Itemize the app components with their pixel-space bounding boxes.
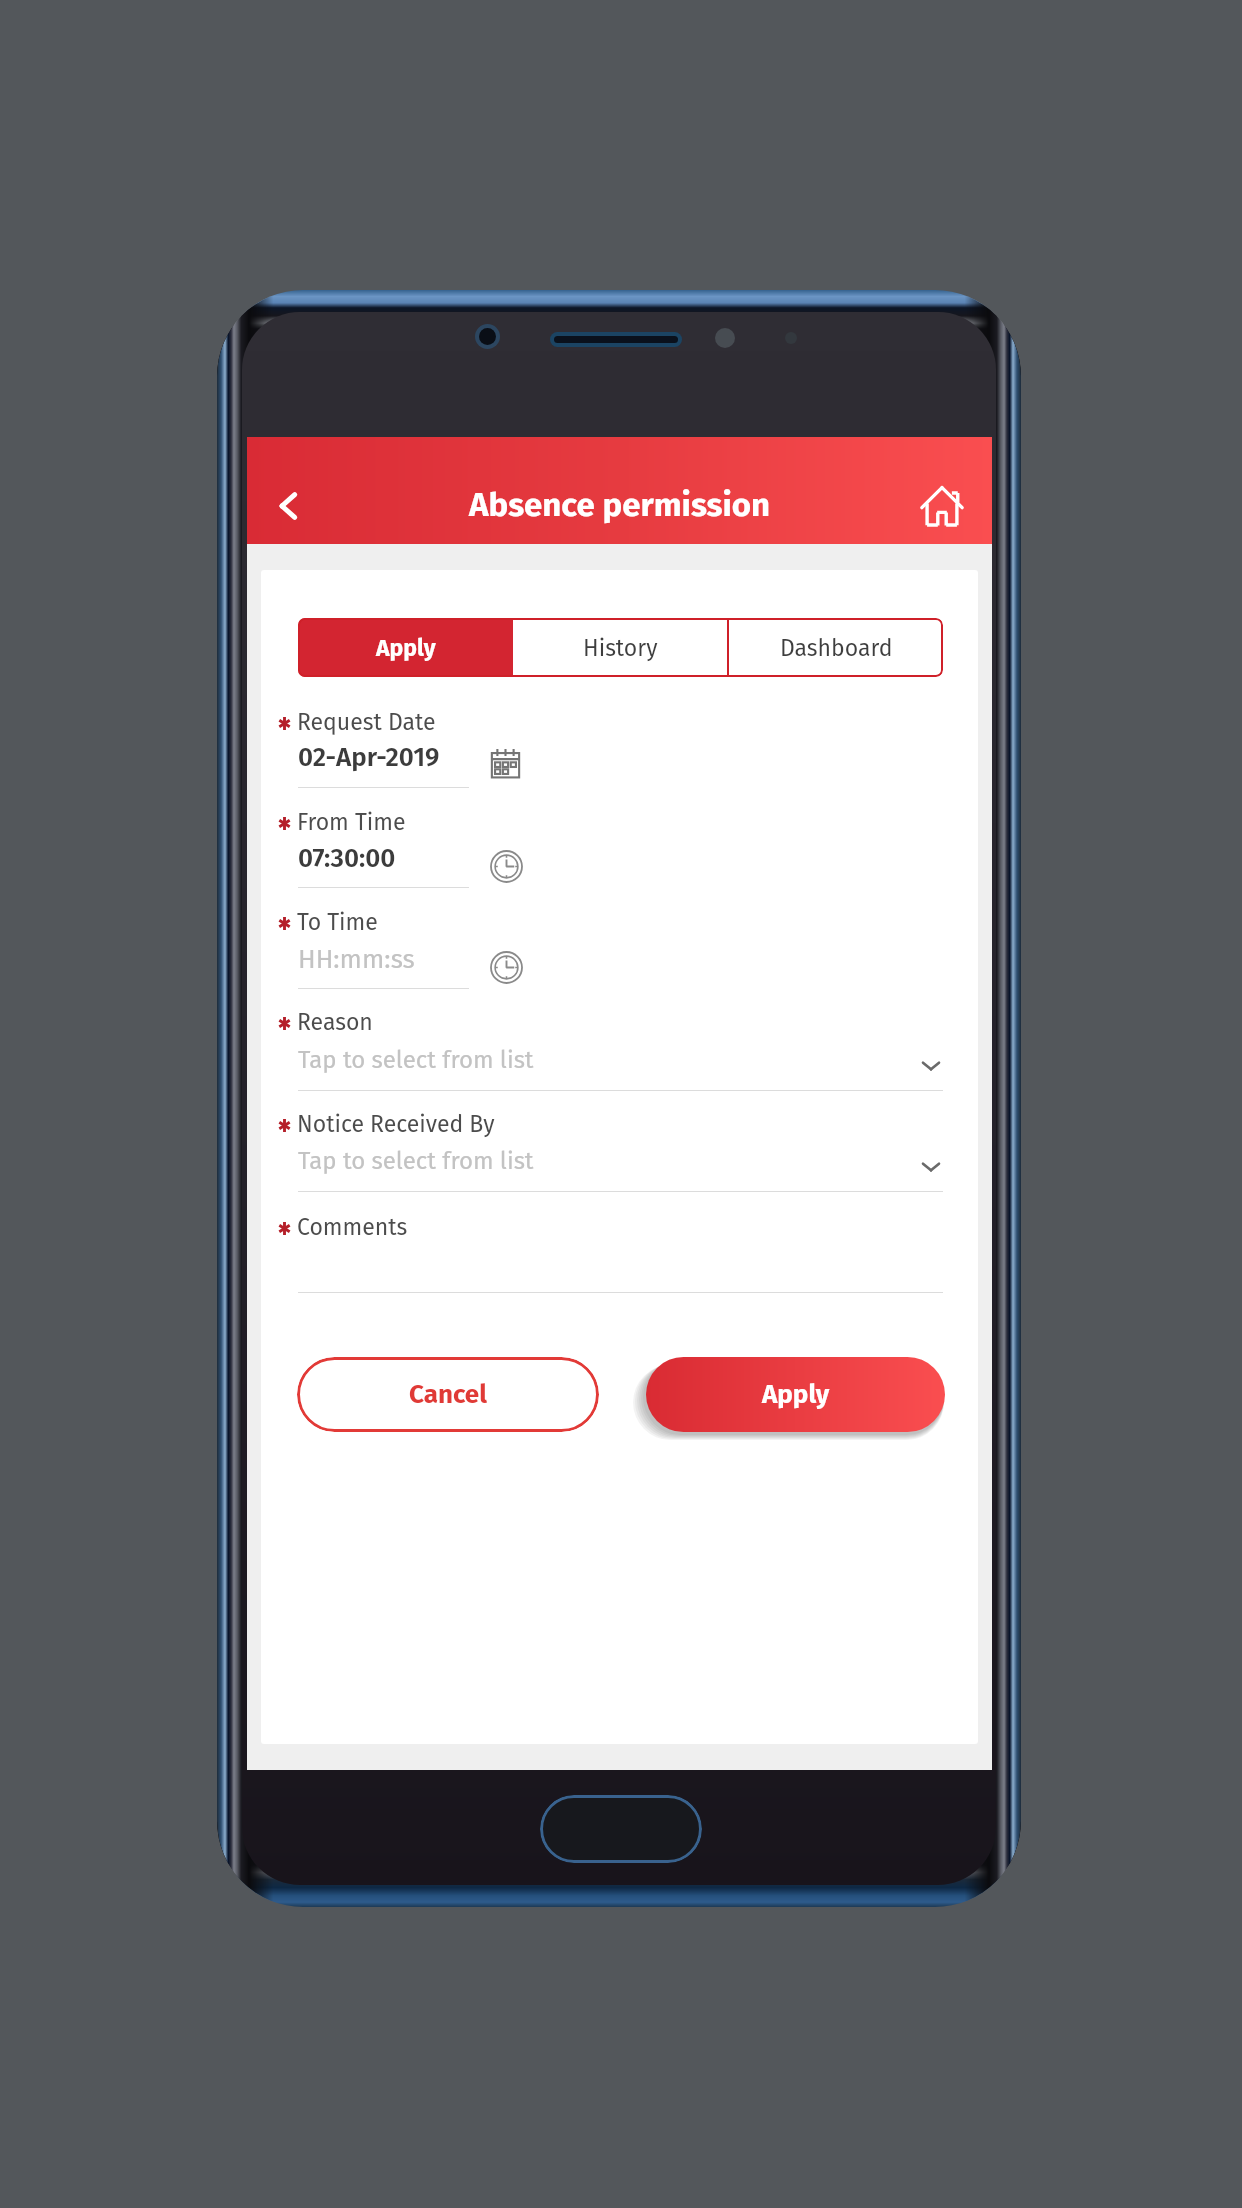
- staticText: Request Date: [297, 708, 436, 736]
- button[interactable]: Tap to select from list: [298, 1147, 943, 1176]
- button[interactable]: Pick time: [484, 945, 528, 989]
- button[interactable]: Open list: [909, 1145, 953, 1189]
- button[interactable]: 07:30:00: [298, 843, 469, 874]
- button[interactable]: Back: [249, 452, 327, 559]
- button[interactable]: Pick date: [483, 741, 527, 785]
- button[interactable]: Pick time: [484, 844, 528, 888]
- staticText: 07:30:00: [298, 843, 396, 874]
- staticText: Apply: [762, 1379, 830, 1410]
- button[interactable]: Open list: [909, 1044, 953, 1088]
- staticText: Tap to select from list: [298, 1046, 534, 1075]
- button[interactable]: 02-Apr-2019: [298, 742, 469, 773]
- button[interactable]: Cancel: [297, 1357, 599, 1432]
- staticText: Cancel: [409, 1379, 487, 1410]
- button[interactable]: Dashboard: [729, 618, 943, 677]
- button[interactable]: Apply: [298, 618, 513, 677]
- staticText: 02-Apr-2019: [298, 742, 440, 773]
- button[interactable]: Home: [890, 452, 994, 559]
- button[interactable]: Tap to select from list: [298, 1046, 943, 1075]
- button[interactable]: HH:mm:ss: [298, 944, 469, 975]
- staticText: Tap to select from list: [298, 1147, 534, 1176]
- staticText: History: [583, 634, 658, 662]
- staticText: Comments: [297, 1213, 408, 1241]
- button[interactable]: History: [513, 618, 727, 677]
- staticText: Notice Received By: [297, 1110, 495, 1138]
- staticText: Absence permission: [469, 485, 771, 525]
- button[interactable]: Apply: [646, 1357, 945, 1432]
- staticText: Dashboard: [780, 634, 893, 662]
- staticText: To Time: [297, 908, 378, 936]
- staticText: From Time: [297, 808, 406, 836]
- staticText: Apply: [376, 634, 436, 662]
- staticText: Reason: [297, 1008, 373, 1036]
- staticText: HH:mm:ss: [298, 944, 415, 975]
